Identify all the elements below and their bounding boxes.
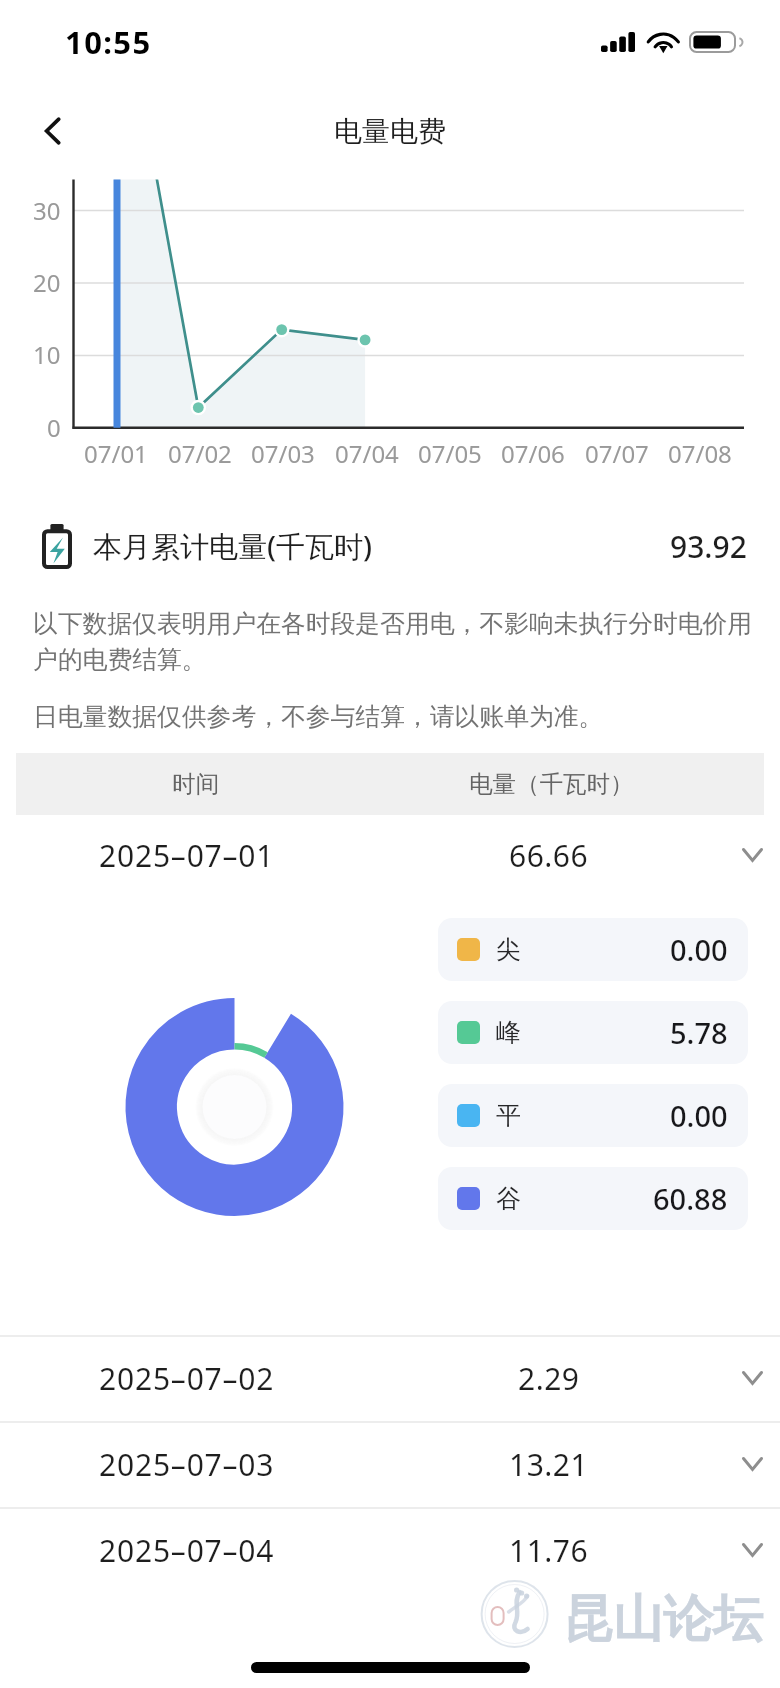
button[interactable]: 2025–07–01 xyxy=(0,812,780,898)
staticText: 尖 xyxy=(496,934,521,965)
staticText: 时间 xyxy=(172,769,219,799)
button[interactable]: Back xyxy=(26,104,80,158)
staticText: 本月累计电量(千瓦时) xyxy=(93,526,373,566)
staticText: 以下数据仅表明用户在各时段是否用电，不影响未执行分时电价用户的电费结算。 xyxy=(33,608,758,675)
staticText: 60.88 xyxy=(653,1179,728,1218)
button[interactable]: 平 xyxy=(438,1084,748,1147)
staticText: 07/03 xyxy=(251,437,315,470)
staticText: 07/08 xyxy=(668,437,732,470)
staticText: 07/05 xyxy=(418,437,482,470)
staticText: 07/07 xyxy=(585,437,649,470)
staticText: 日电量数据仅供参考，不参与结算，请以账单为准。 xyxy=(33,701,604,732)
staticText: 07/06 xyxy=(501,437,565,470)
button[interactable]: 尖 xyxy=(438,918,748,981)
staticText: 93.92 xyxy=(670,526,747,567)
button[interactable]: 谷 xyxy=(438,1167,748,1230)
staticText: 07/04 xyxy=(335,437,399,470)
button[interactable]: 2025–07–04 xyxy=(0,1507,780,1593)
staticText: 0.00 xyxy=(670,930,728,969)
staticText: 07/02 xyxy=(168,437,232,470)
staticText: 0.00 xyxy=(670,1096,728,1135)
staticText: 2025–07–03 xyxy=(99,1444,275,1485)
staticText: 2.29 xyxy=(518,1358,580,1399)
staticText: 2025–07–02 xyxy=(99,1358,275,1399)
staticText: 13.21 xyxy=(509,1444,589,1485)
staticText: 峰 xyxy=(496,1017,521,1048)
staticText: 谷 xyxy=(496,1183,521,1214)
button[interactable]: 2025–07–03 xyxy=(0,1421,780,1507)
staticText: 20 xyxy=(33,266,61,299)
staticText: 电量电费 xyxy=(334,114,446,149)
staticText: 11.76 xyxy=(509,1530,589,1571)
staticText: 2025–07–04 xyxy=(99,1530,275,1571)
staticText: 07/01 xyxy=(84,437,148,470)
staticText: 电量（千瓦时） xyxy=(469,769,634,799)
staticText: 昆山论坛 xyxy=(563,1588,763,1651)
button[interactable]: 2025–07–02 xyxy=(0,1335,780,1421)
staticText: 66.66 xyxy=(509,835,589,876)
staticText: 0 xyxy=(47,411,61,444)
staticText: 30 xyxy=(33,194,61,227)
staticText: 10:55 xyxy=(65,21,152,63)
staticText: 5.78 xyxy=(670,1013,728,1052)
button[interactable]: 峰 xyxy=(438,1001,748,1064)
staticText: 10 xyxy=(33,338,61,371)
staticText: 平 xyxy=(496,1100,521,1131)
staticText: 2025–07–01 xyxy=(99,835,275,876)
